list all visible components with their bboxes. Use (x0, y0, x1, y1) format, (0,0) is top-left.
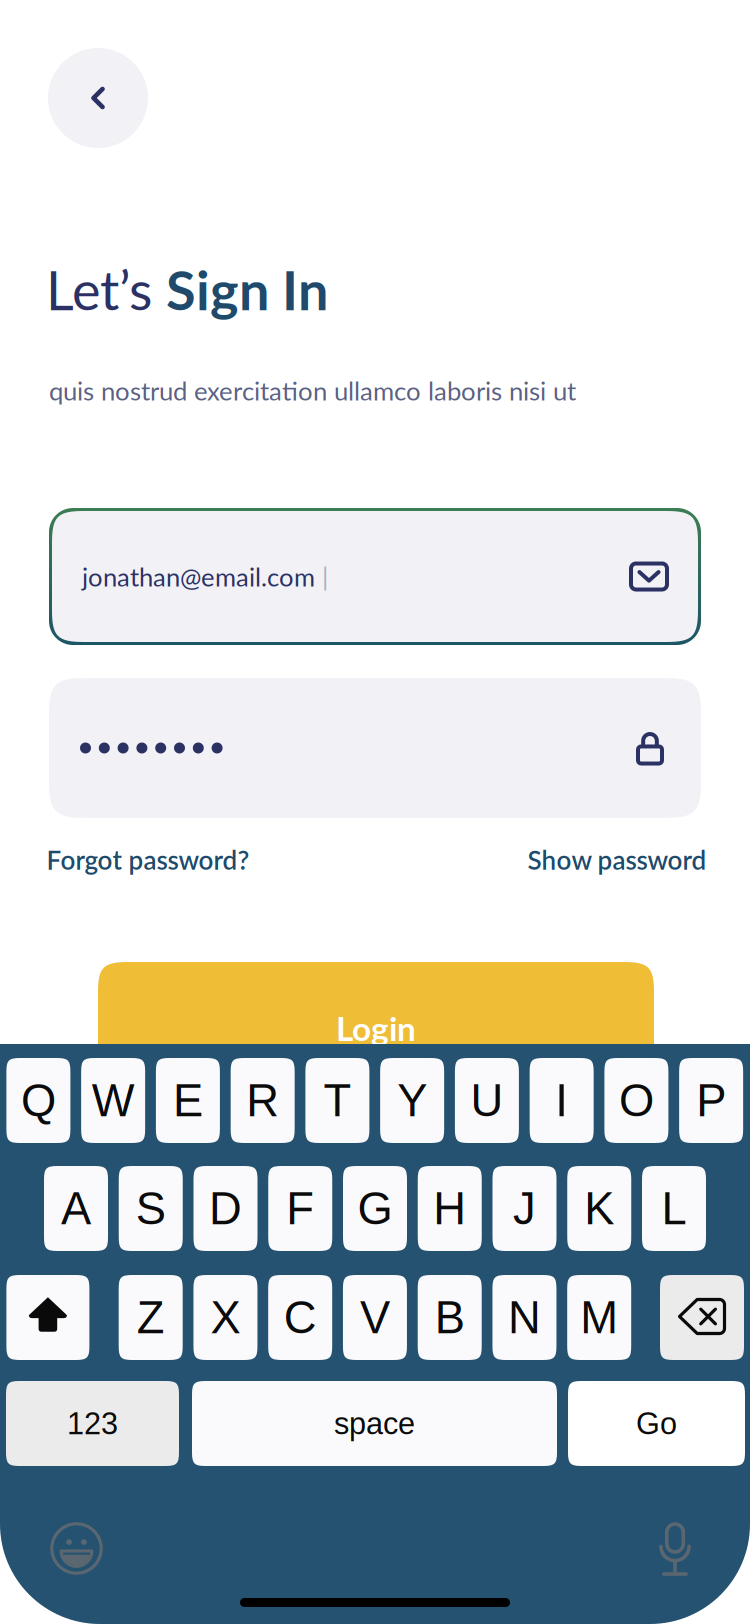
staticText: Login (336, 1008, 416, 1048)
staticText: Forgot password? (46, 844, 249, 875)
staticText: F (286, 1183, 314, 1234)
button[interactable]: 123 (6, 1381, 179, 1466)
staticText: O (619, 1075, 654, 1126)
staticText: I (555, 1075, 568, 1126)
staticText: Y (397, 1075, 427, 1126)
staticText: Show password (527, 844, 706, 875)
staticText: U (470, 1075, 503, 1126)
button[interactable]: O (604, 1058, 668, 1143)
staticText: | (315, 561, 328, 592)
staticText: Go (636, 1406, 677, 1441)
button[interactable]: L (642, 1166, 706, 1251)
button[interactable]: Login (98, 962, 654, 1094)
button[interactable]: A (44, 1166, 108, 1251)
staticText: L (661, 1183, 686, 1234)
staticText: M (580, 1292, 618, 1343)
staticText: B (435, 1292, 465, 1343)
staticText: V (360, 1292, 390, 1343)
button[interactable]: Back (48, 48, 148, 148)
button[interactable]: Delete (660, 1275, 744, 1360)
button[interactable]: G (343, 1166, 407, 1251)
staticText: E (173, 1075, 203, 1126)
staticText: R (246, 1075, 279, 1126)
button[interactable]: Z (119, 1275, 183, 1360)
button[interactable]: E (156, 1058, 220, 1143)
button[interactable]: Go (568, 1381, 745, 1466)
staticText: W (92, 1075, 135, 1126)
button[interactable]: Show password (527, 844, 706, 875)
staticText: K (584, 1183, 614, 1234)
button[interactable]: Q (6, 1058, 70, 1143)
button[interactable]: X (193, 1275, 257, 1360)
staticText: Q (21, 1075, 56, 1126)
button[interactable]: Dictation (660, 1524, 690, 1574)
button[interactable]: U (455, 1058, 519, 1143)
button[interactable]: Y (380, 1058, 444, 1143)
staticText: T (323, 1075, 351, 1126)
staticText: C (284, 1292, 317, 1343)
button[interactable]: S (119, 1166, 183, 1251)
staticText: G (357, 1183, 392, 1234)
staticText: jonathan@email.com (82, 561, 315, 592)
staticText: space (334, 1406, 415, 1441)
button[interactable]: I (530, 1058, 594, 1143)
button[interactable]: H (418, 1166, 482, 1251)
button[interactable]: R (231, 1058, 295, 1143)
staticText: P (696, 1075, 726, 1126)
button[interactable]: M (567, 1275, 631, 1360)
button[interactable]: F (268, 1166, 332, 1251)
button[interactable]: B (418, 1275, 482, 1360)
button[interactable]: C (268, 1275, 332, 1360)
button[interactable]: D (193, 1166, 257, 1251)
button[interactable]: P (679, 1058, 743, 1143)
button[interactable]: N (492, 1275, 556, 1360)
button[interactable]: space (192, 1381, 557, 1466)
staticText: Sign In (166, 257, 328, 322)
button[interactable]: Shift (6, 1275, 89, 1360)
button[interactable]: T (305, 1058, 369, 1143)
button[interactable]: W (81, 1058, 145, 1143)
staticText: D (209, 1183, 242, 1234)
staticText: J (513, 1183, 536, 1234)
button[interactable]: Forgot password? (46, 844, 249, 875)
button[interactable]: J (492, 1166, 556, 1251)
staticText: A (61, 1183, 91, 1234)
button[interactable]: Emoji (50, 1522, 103, 1575)
button[interactable]: V (343, 1275, 407, 1360)
staticText: H (433, 1183, 466, 1234)
staticText: Z (137, 1292, 165, 1343)
staticText: 123 (67, 1406, 118, 1441)
staticText: X (210, 1292, 240, 1343)
button[interactable]: K (567, 1166, 631, 1251)
staticText: Let’s (46, 257, 166, 322)
staticText: quis nostrud exercitation ullamco labori… (49, 375, 576, 406)
staticText: N (508, 1292, 541, 1343)
staticText: S (136, 1183, 166, 1234)
